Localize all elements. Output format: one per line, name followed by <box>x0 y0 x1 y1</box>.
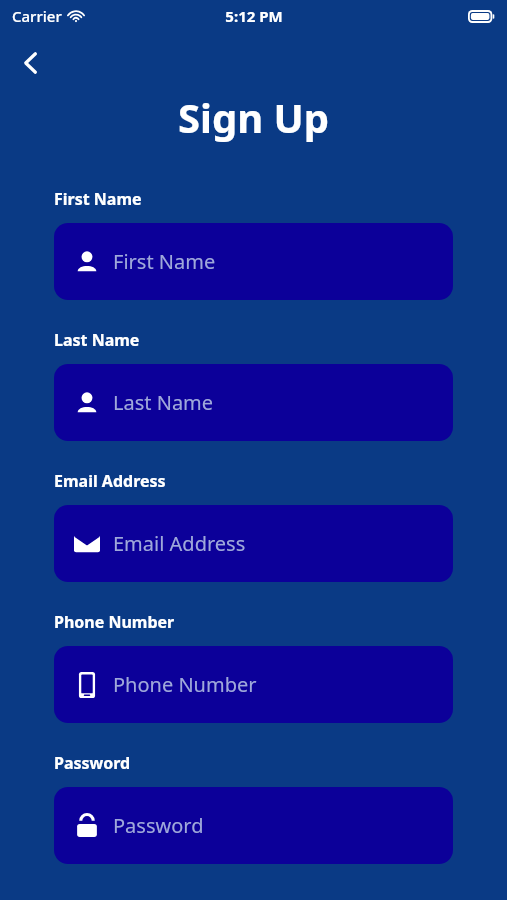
staticText: Email Address <box>54 470 166 492</box>
staticText: Carrier <box>12 6 62 26</box>
staticText: First Name <box>54 188 142 210</box>
staticText: First Name <box>113 248 216 275</box>
staticText: Sign Up <box>0 90 507 144</box>
button[interactable]: Last Name <box>54 364 453 441</box>
staticText: Last Name <box>113 389 214 416</box>
staticText: Email Address <box>113 530 246 557</box>
staticText: Last Name <box>54 329 140 351</box>
staticText: Phone Number <box>113 671 257 698</box>
button[interactable]: First Name <box>54 223 453 300</box>
staticText: 5:12 PM <box>225 6 283 26</box>
button[interactable]: Phone Number <box>54 646 453 723</box>
button[interactable]: Password <box>54 787 453 864</box>
button[interactable]: Back <box>10 42 52 84</box>
staticText: Phone Number <box>54 611 175 633</box>
staticText: Password <box>54 752 131 774</box>
button[interactable]: Email Address <box>54 505 453 582</box>
staticText: Password <box>113 812 204 839</box>
